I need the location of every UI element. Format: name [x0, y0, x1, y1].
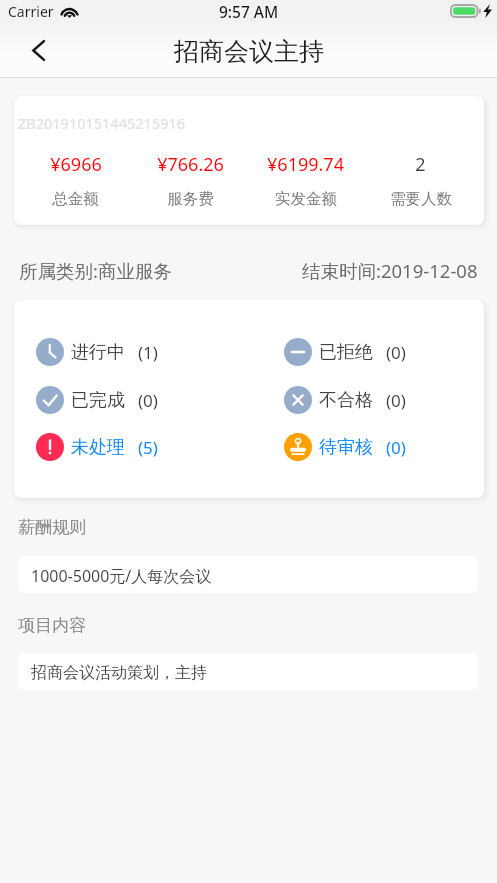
staticText: 需要人数: [390, 189, 452, 209]
staticText: ¥766.26: [157, 152, 224, 177]
staticText: ¥6199.74: [267, 152, 344, 177]
staticText: 服务费: [167, 189, 214, 209]
staticText: 已完成: [71, 389, 125, 412]
staticText: 实发金额: [275, 189, 337, 209]
staticText: 未处理: [71, 436, 125, 459]
staticText: ¥6966: [50, 152, 102, 177]
button[interactable]: 不合格: [284, 386, 406, 414]
staticText: (5): [138, 436, 158, 459]
button[interactable]: 1000-5000元/人每次会议: [18, 556, 478, 593]
staticText: 所属类别:商业服务: [19, 258, 172, 283]
staticText: 2: [415, 152, 426, 177]
staticText: 总金额: [52, 189, 99, 209]
button[interactable]: 未处理: [36, 433, 158, 461]
staticText: 已拒绝: [319, 341, 373, 364]
staticText: (1): [138, 341, 158, 364]
staticText: (0): [386, 389, 406, 412]
staticText: 进行中: [71, 341, 125, 364]
staticText: 项目内容: [18, 615, 86, 636]
staticText: 招商会议活动策划，主持: [31, 663, 207, 683]
staticText: 不合格: [319, 389, 373, 412]
staticText: 结束时间:2019-12-08: [302, 258, 478, 283]
staticText: ZB201910151445215916: [18, 113, 186, 133]
button[interactable]: 进行中: [36, 338, 158, 366]
staticText: 薪酬规则: [18, 517, 86, 538]
staticText: 招商会议主持: [174, 36, 324, 67]
button[interactable]: Back: [16, 28, 60, 72]
button[interactable]: 待审核: [284, 433, 406, 461]
button[interactable]: 已拒绝: [284, 338, 406, 366]
staticText: Carrier: [8, 2, 54, 21]
staticText: (0): [386, 436, 406, 459]
button[interactable]: 已完成: [36, 386, 158, 414]
staticText: 1000-5000元/人每次会议: [31, 565, 212, 587]
staticText: 待审核: [319, 436, 373, 459]
staticText: 9:57 AM: [219, 1, 279, 21]
button[interactable]: 招商会议活动策划，主持: [18, 653, 478, 690]
staticText: (0): [386, 341, 406, 364]
staticText: (0): [138, 389, 158, 412]
